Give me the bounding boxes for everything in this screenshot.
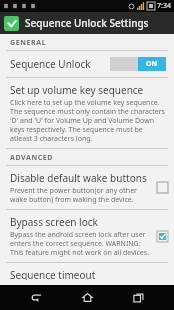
staticText: 7:34: [157, 1, 171, 11]
button[interactable]: Recent apps: [123, 285, 153, 310]
staticText: ON: [146, 59, 158, 69]
button[interactable]: Bypass screen lock: [0, 210, 174, 262]
staticText: GENERAL: [10, 38, 47, 48]
staticText: Sequence Unlock mode: [10, 57, 110, 71]
staticText: ADVANCED: [10, 153, 54, 163]
button[interactable]: Sequence Unlock mode: [0, 51, 174, 77]
button[interactable]: Sequence timeout: [0, 263, 174, 285]
button[interactable]: Disable default wake buttons: [0, 166, 174, 209]
staticText: Click here to set up the volume key sequ…: [10, 98, 166, 143]
button[interactable]: Home: [72, 285, 102, 310]
staticText: Sequence timeout: [10, 268, 96, 280]
staticText: Set up volume key sequence: [10, 83, 144, 97]
button[interactable]: Back: [21, 285, 51, 310]
staticText: Bypass the android screen lock after use…: [10, 230, 151, 257]
other: Disable default wake buttons: [157, 182, 168, 193]
staticText: Sequence Unlock Settings: [25, 16, 149, 30]
staticText: Prevent the power button(or any other wa…: [10, 186, 151, 204]
other: Bypass screen lock: [157, 231, 168, 242]
staticText: Disable default wake buttons: [10, 171, 147, 185]
button[interactable]: Set up volume key sequence: [0, 78, 174, 148]
staticText: Bypass screen lock: [10, 215, 98, 229]
